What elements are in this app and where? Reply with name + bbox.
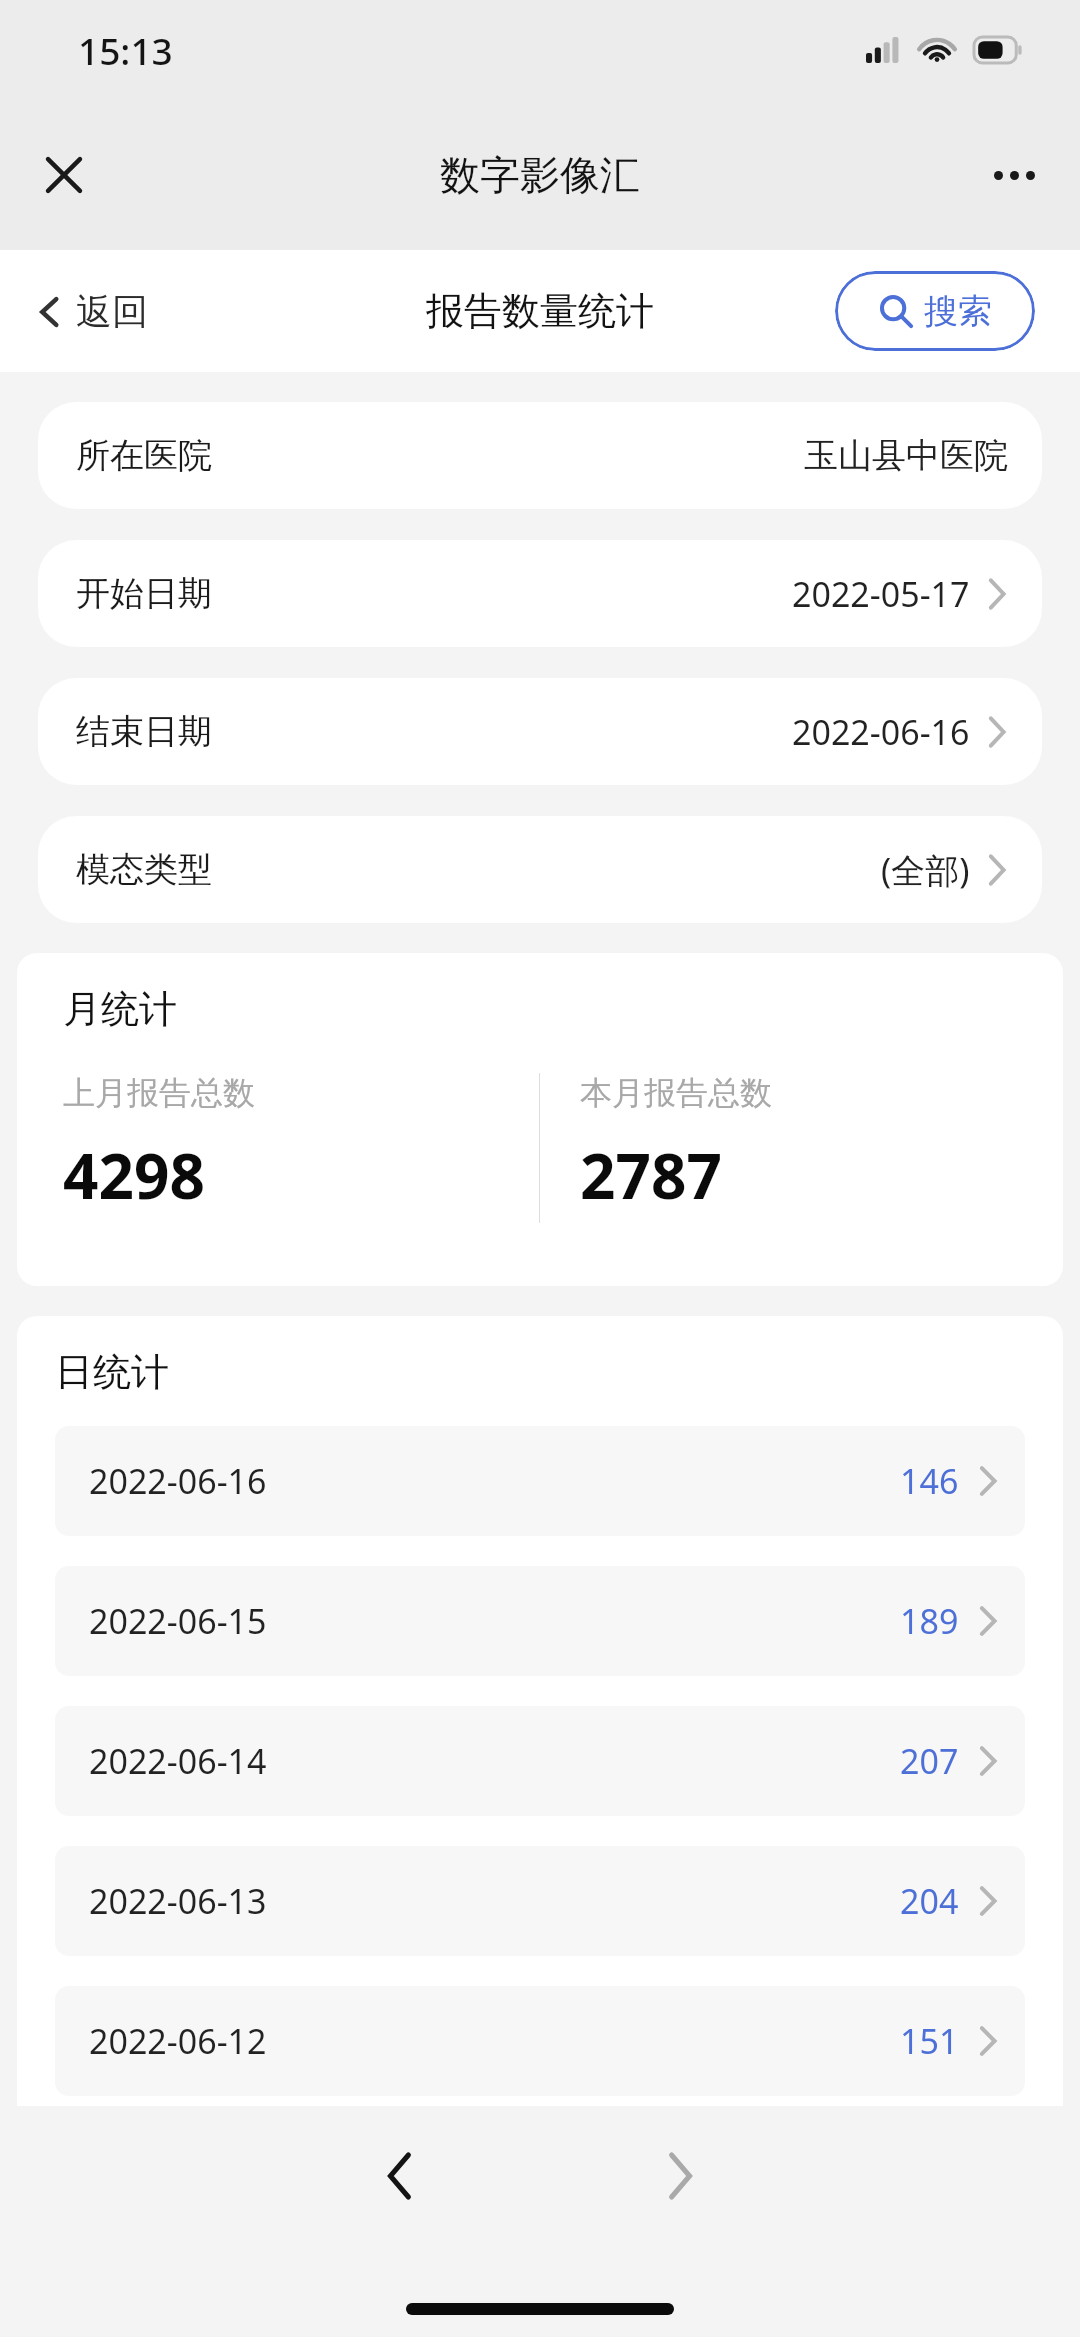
- staticText: 146: [900, 1458, 959, 1504]
- staticText: 数字影像汇: [440, 150, 640, 200]
- staticText: 2022-06-14: [89, 1738, 267, 1784]
- staticText: 日统计: [55, 1348, 169, 1396]
- button[interactable]: 搜索: [835, 271, 1035, 351]
- button[interactable]: Back: [345, 2126, 455, 2226]
- button[interactable]: Forward: [625, 2126, 735, 2226]
- staticText: 玉山县中医院: [804, 434, 1008, 477]
- button[interactable]: 2022-06-13: [55, 1846, 1025, 1956]
- staticText: 上月报告总数: [63, 1073, 255, 1113]
- button[interactable]: 2022-06-14: [55, 1706, 1025, 1816]
- staticText: 月统计: [63, 985, 177, 1033]
- staticText: 搜索: [924, 290, 992, 333]
- button[interactable]: More options: [978, 139, 1050, 211]
- staticText: 2022-06-16: [792, 709, 970, 755]
- staticText: 2022-06-13: [89, 1878, 267, 1924]
- staticText: (全部): [881, 847, 970, 893]
- button[interactable]: 2022-06-15: [55, 1566, 1025, 1676]
- button[interactable]: 2022-06-12: [55, 1986, 1025, 2096]
- staticText: 2787: [580, 1133, 722, 1217]
- button[interactable]: 结束日期: [38, 678, 1042, 785]
- button[interactable]: Close: [28, 139, 100, 211]
- staticText: 151: [900, 2018, 959, 2064]
- staticText: 207: [900, 1738, 959, 1784]
- staticText: 2022-06-12: [89, 2018, 267, 2064]
- staticText: 2022-05-17: [792, 571, 970, 617]
- staticText: 结束日期: [76, 710, 212, 753]
- button[interactable]: 返回: [36, 289, 148, 334]
- staticText: 返回: [76, 289, 148, 334]
- staticText: 15:13: [78, 25, 173, 75]
- staticText: 所在医院: [76, 434, 212, 477]
- staticText: 本月报告总数: [580, 1073, 772, 1113]
- staticText: 204: [900, 1878, 959, 1924]
- staticText: 报告数量统计: [426, 287, 654, 335]
- staticText: 模态类型: [76, 848, 212, 891]
- staticText: 2022-06-15: [89, 1598, 267, 1644]
- button[interactable]: 2022-06-16: [55, 1426, 1025, 1536]
- staticText: 189: [900, 1598, 959, 1644]
- staticText: 2022-06-16: [89, 1458, 267, 1504]
- button[interactable]: 所在医院: [38, 402, 1042, 509]
- button[interactable]: 模态类型: [38, 816, 1042, 923]
- button[interactable]: 开始日期: [38, 540, 1042, 647]
- staticText: 开始日期: [76, 572, 212, 615]
- staticText: 4298: [63, 1133, 205, 1217]
